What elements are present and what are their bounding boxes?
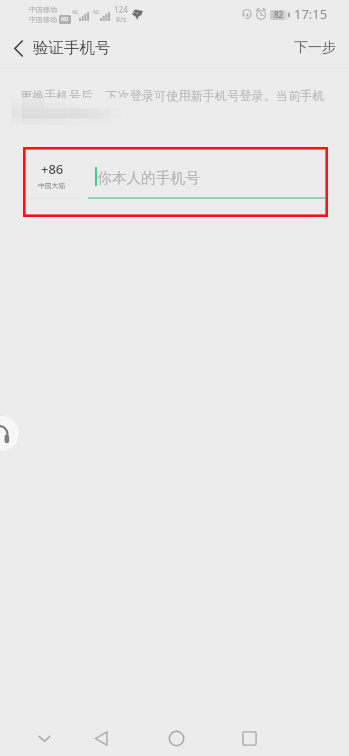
staticText: 82 xyxy=(274,9,284,20)
staticText: 中国移动 xyxy=(29,5,57,14)
staticText: 中国大陆 xyxy=(38,181,66,190)
staticText: K/s xyxy=(116,15,127,25)
button[interactable]: +86 xyxy=(24,153,80,196)
button[interactable]: 下一步 xyxy=(281,31,349,65)
staticText: +86 xyxy=(41,160,64,178)
staticText: 4G xyxy=(72,9,79,16)
button[interactable]: Home xyxy=(154,716,198,756)
staticText: 中国移动 xyxy=(29,15,57,24)
staticText: 下一步 xyxy=(294,39,336,57)
other: Back xyxy=(14,40,23,57)
staticText: 更换手机号后，下次登录可使用新手机号登录。当前手机 xyxy=(20,88,325,103)
staticText: 4G xyxy=(93,9,100,16)
button[interactable]: Back xyxy=(0,33,121,63)
staticText: 号 186****3756 xyxy=(20,105,112,122)
button[interactable]: Hide keyboard xyxy=(22,716,66,756)
staticText: HD xyxy=(61,16,69,23)
staticText: 17:15 xyxy=(294,5,328,23)
button[interactable]: Recents xyxy=(227,716,271,756)
button[interactable]: Music player xyxy=(0,415,20,452)
button[interactable]: Back xyxy=(79,716,123,756)
staticText: 你本人的手机号 xyxy=(97,169,200,188)
staticText: 验证手机号 xyxy=(33,38,111,58)
staticText: 124 xyxy=(114,4,128,15)
